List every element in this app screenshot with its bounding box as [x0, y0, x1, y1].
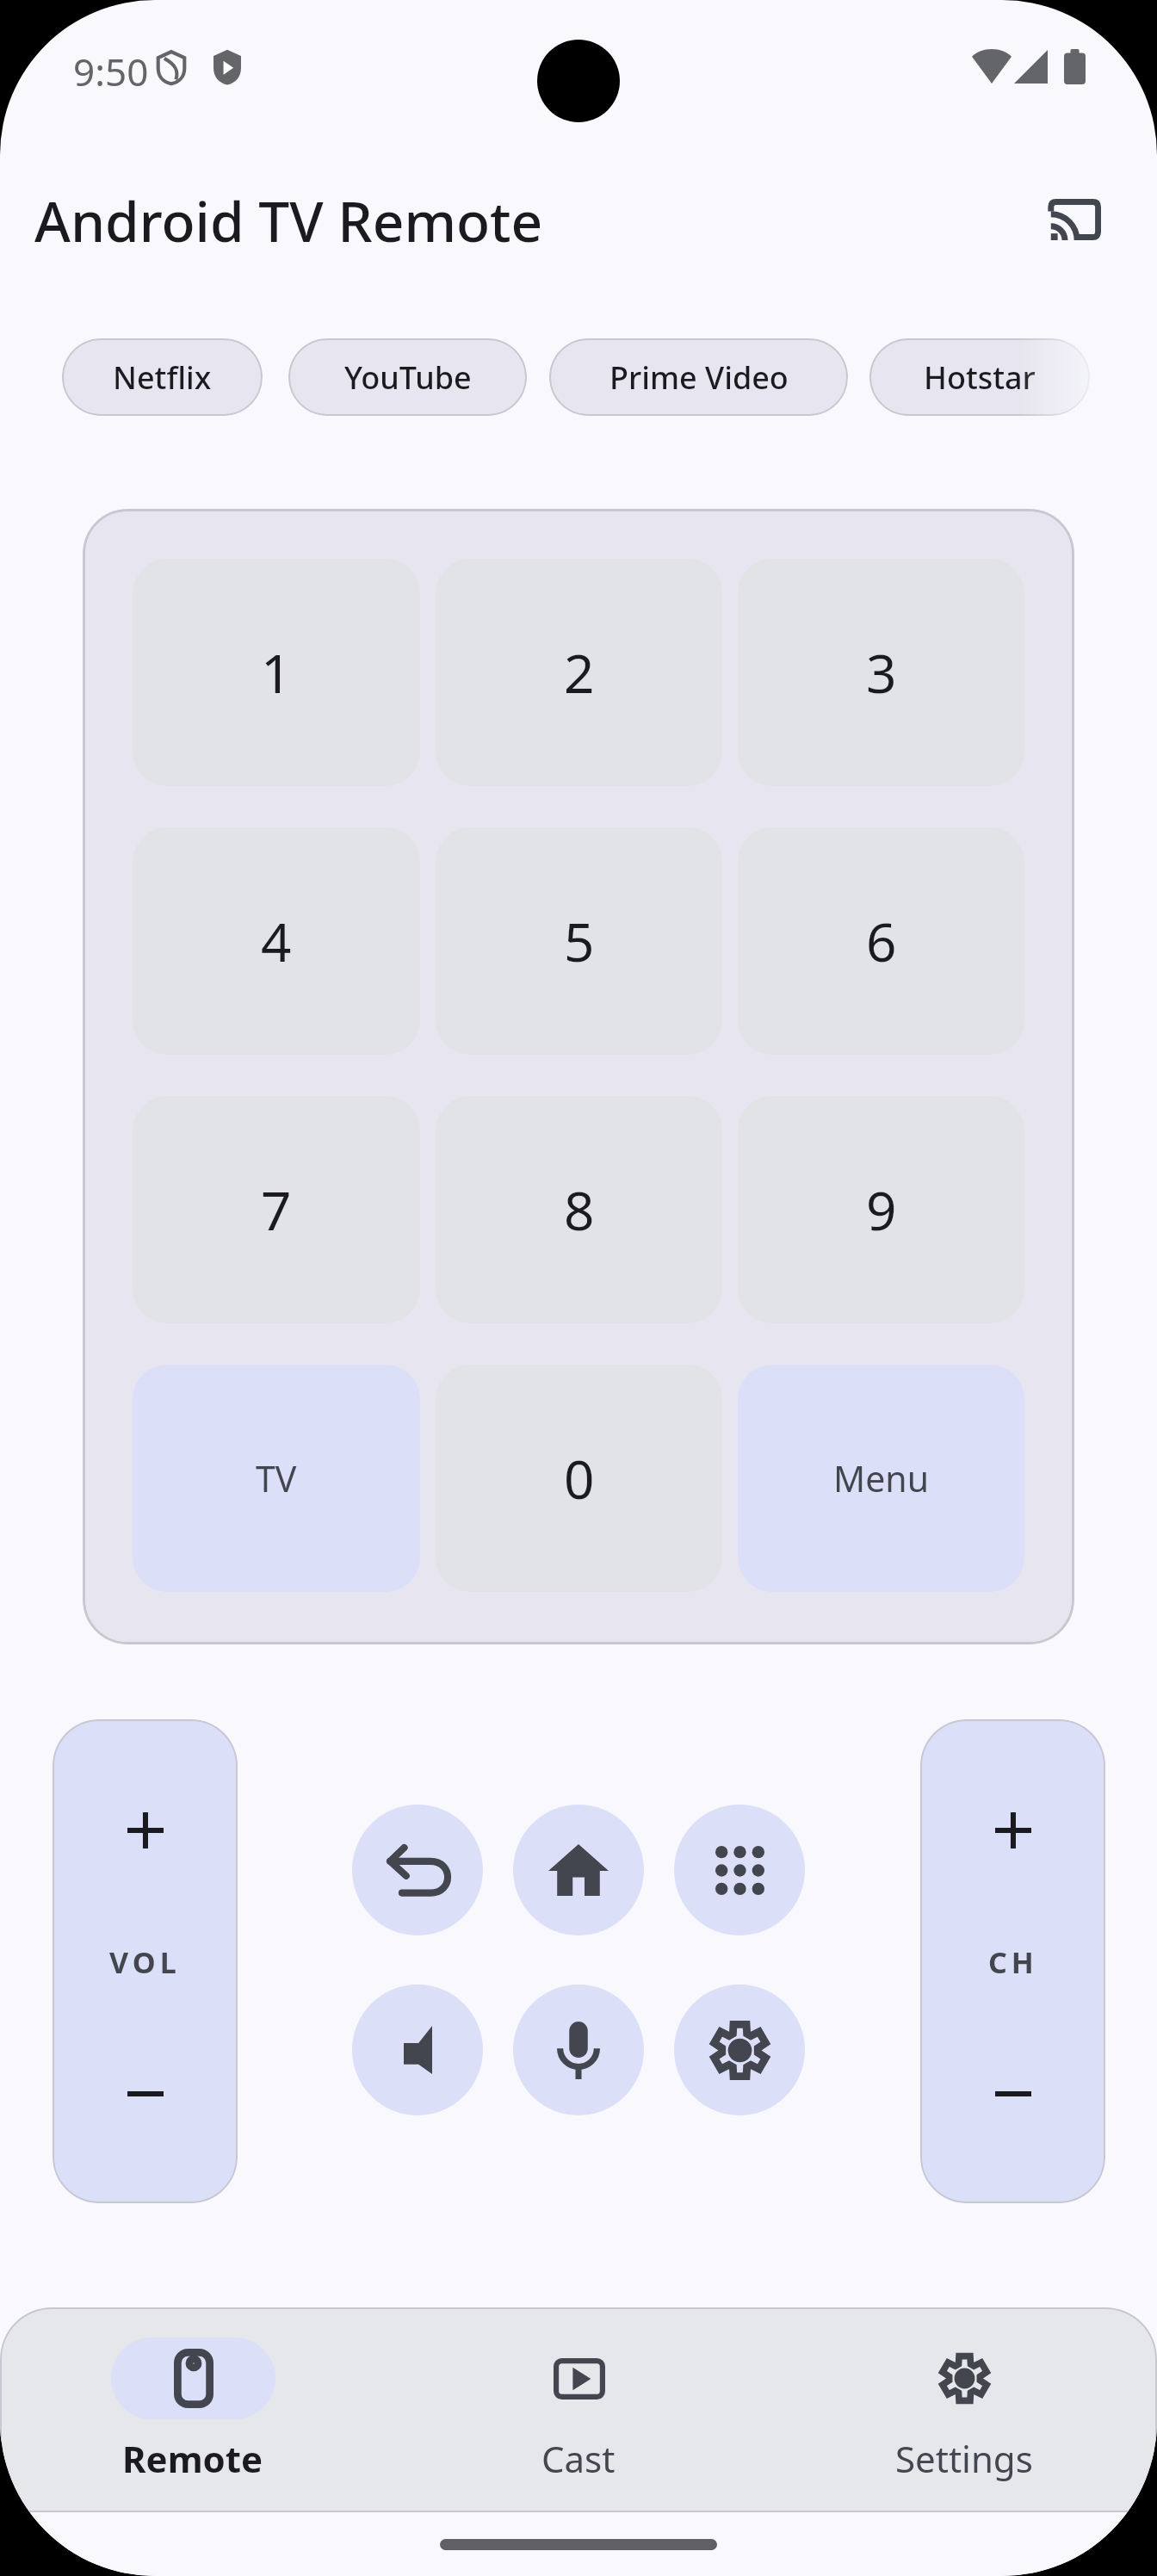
button[interactable]: Netflix: [62, 338, 263, 416]
button[interactable]: TV: [133, 1365, 420, 1592]
button[interactable]: Channel: [920, 1719, 1105, 2203]
button[interactable]: Home: [513, 1805, 644, 1935]
button[interactable]: Settings: [674, 1985, 805, 2115]
button[interactable]: 8: [436, 1096, 722, 1323]
staticText: 7: [261, 1173, 292, 1246]
button[interactable]: Cast: [386, 2307, 771, 2512]
button[interactable]: Back: [352, 1805, 483, 1935]
staticText: 8: [564, 1173, 595, 1246]
button[interactable]: 6: [738, 827, 1024, 1055]
staticText: Menu: [833, 1454, 929, 1502]
staticText: 6: [866, 905, 897, 977]
button[interactable]: YouTube: [288, 338, 527, 416]
staticText: Netflix: [113, 356, 212, 399]
staticText: 4: [261, 905, 292, 977]
button[interactable]: Remote: [0, 2307, 386, 2512]
staticText: 0: [564, 1442, 595, 1514]
button[interactable]: 7: [133, 1096, 420, 1323]
staticText: Cast: [541, 2434, 616, 2483]
staticText: YouTube: [344, 356, 472, 399]
staticText: 1: [261, 636, 292, 709]
button[interactable]: Mute: [352, 1985, 483, 2115]
button[interactable]: Cast to device: [1036, 181, 1114, 258]
staticText: Remote: [122, 2434, 263, 2483]
staticText: 3: [866, 636, 897, 709]
staticText: TV: [256, 1454, 297, 1502]
button[interactable]: 1: [133, 559, 420, 786]
button[interactable]: Voice search: [513, 1985, 644, 2115]
staticText: 9:50: [73, 46, 149, 97]
button[interactable]: 9: [738, 1096, 1024, 1323]
staticText: Hotstar: [924, 356, 1036, 399]
button[interactable]: 0: [436, 1365, 722, 1592]
staticText: Android TV Remote: [34, 183, 543, 258]
button[interactable]: Apps: [674, 1805, 805, 1935]
button[interactable]: 5: [436, 827, 722, 1055]
button[interactable]: 2: [436, 559, 722, 786]
button[interactable]: Prime Video: [549, 338, 848, 416]
staticText: 2: [564, 636, 595, 709]
button[interactable]: Hotstar: [869, 338, 1090, 416]
button[interactable]: Settings: [771, 2307, 1157, 2512]
staticText: Settings: [895, 2434, 1033, 2483]
button[interactable]: Menu: [738, 1365, 1024, 1592]
staticText: CH: [988, 1942, 1038, 1982]
button[interactable]: 3: [738, 559, 1024, 786]
staticText: 5: [564, 905, 595, 977]
button[interactable]: Volume: [53, 1719, 238, 2203]
staticText: 9: [866, 1173, 897, 1246]
staticText: VOL: [109, 1942, 181, 1982]
staticText: Prime Video: [609, 356, 789, 399]
button[interactable]: 4: [133, 827, 420, 1055]
